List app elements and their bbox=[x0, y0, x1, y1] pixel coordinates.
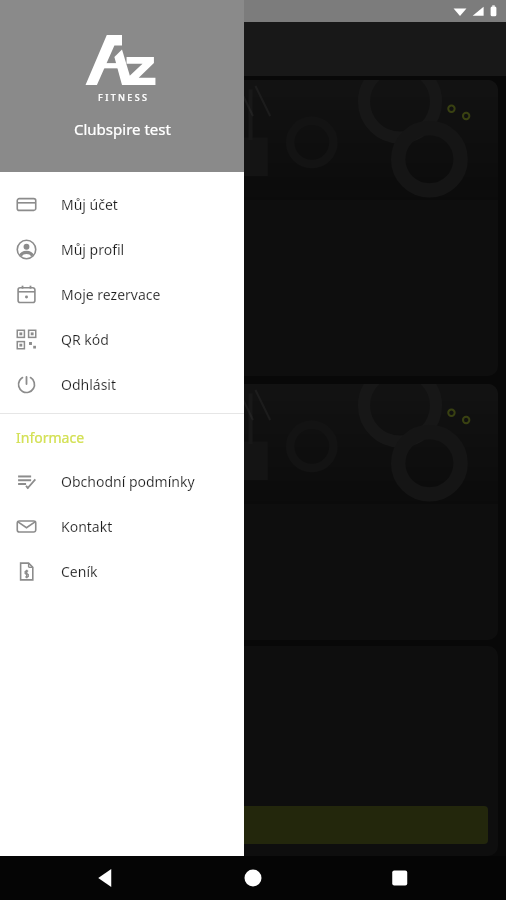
staticText: Moje rezervace bbox=[61, 285, 161, 304]
staticText: Kontakt bbox=[61, 517, 113, 536]
staticText: Můj profil bbox=[61, 240, 125, 259]
button[interactable]: Rezervace bbox=[18, 806, 488, 844]
staticText: F I T N E S S bbox=[98, 91, 147, 103]
button[interactable]: Workout bbox=[8, 646, 498, 856]
staticText: Obchodní podmínky bbox=[61, 472, 195, 491]
staticText: Můj účet bbox=[61, 195, 118, 214]
button[interactable]: Obchodní podmínky bbox=[0, 459, 244, 504]
button[interactable]: Můj účet bbox=[0, 182, 244, 227]
button[interactable]: Rezervace bbox=[8, 80, 498, 376]
staticText: Informace bbox=[16, 428, 85, 447]
button[interactable]: Moje rezervace bbox=[0, 272, 244, 317]
button[interactable]: QR kód bbox=[0, 317, 244, 362]
staticText: Žádné rezervace bbox=[22, 204, 123, 222]
button[interactable]: Odhlásit bbox=[0, 362, 244, 407]
staticText: Žádné novinky bbox=[22, 508, 111, 526]
button[interactable]: Kontakt bbox=[0, 504, 244, 549]
button[interactable]: Ceník bbox=[0, 549, 244, 594]
button[interactable]: Novinky bbox=[8, 384, 498, 640]
button[interactable]: Můj profil bbox=[0, 227, 244, 272]
staticText: Ceník bbox=[61, 562, 98, 581]
staticText: Clubspire test bbox=[74, 119, 171, 139]
staticText: Odhlásit bbox=[61, 375, 117, 394]
staticText: QR kód bbox=[61, 330, 109, 349]
